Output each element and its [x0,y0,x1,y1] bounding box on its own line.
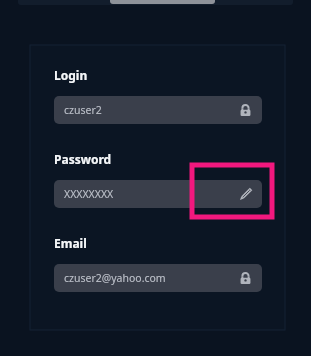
button[interactable]: Login is locked [235,100,255,120]
staticText: Email [54,235,87,251]
button[interactable]: czuser2 [54,96,262,124]
button[interactable]: Email is locked [235,268,255,288]
staticText: Password [54,151,112,167]
staticText: czuser2@yahoo.com [64,271,166,285]
button[interactable]: XXXXXXXX [54,180,262,208]
staticText: czuser2 [64,103,102,117]
button[interactable]: czuser2@yahoo.com [54,264,262,292]
button[interactable]: Edit password [235,184,255,204]
staticText: Login [54,67,88,83]
staticText: XXXXXXXX [64,187,114,201]
